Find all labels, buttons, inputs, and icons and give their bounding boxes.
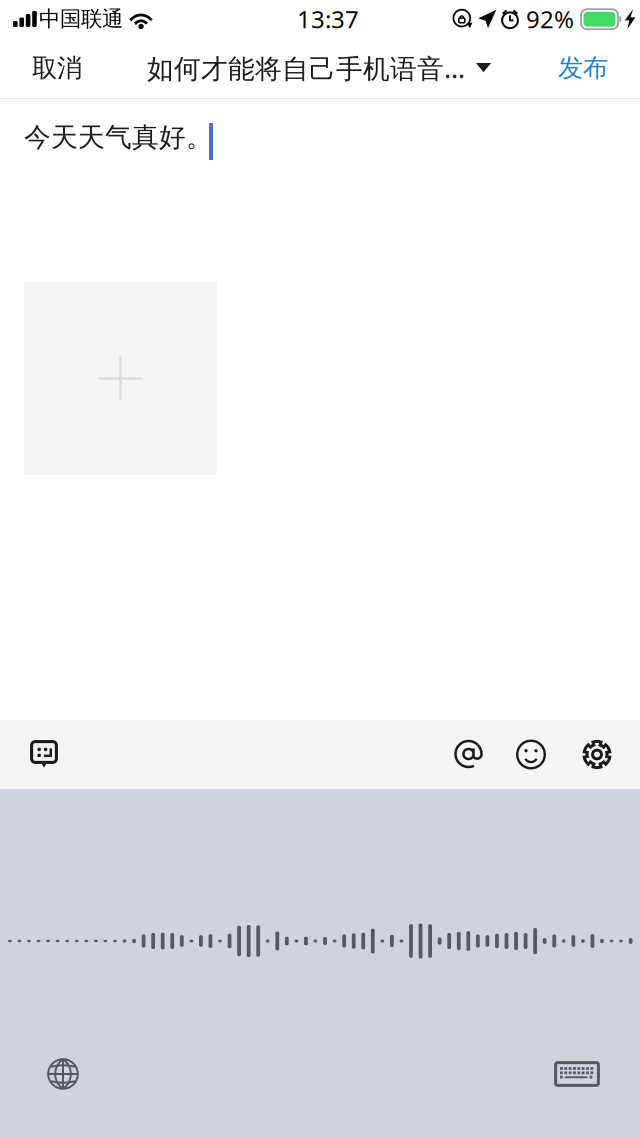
button[interactable]: Show keyboard bbox=[542, 1049, 612, 1099]
button[interactable]: Emoji bbox=[502, 720, 568, 788]
button[interactable]: 取消 bbox=[0, 38, 114, 98]
button[interactable]: Stickers bbox=[16, 722, 72, 787]
button[interactable]: 发布 bbox=[526, 38, 640, 98]
button[interactable]: Settings bbox=[568, 720, 626, 788]
staticText: 今天天气真好。 bbox=[24, 121, 213, 154]
staticText: 取消 bbox=[32, 52, 82, 83]
staticText: 中国联通 bbox=[39, 6, 123, 32]
staticText: 92% bbox=[526, 3, 574, 35]
staticText: 发布 bbox=[558, 52, 608, 83]
staticText: 13:37 bbox=[297, 3, 359, 35]
button[interactable]: Switch input language bbox=[35, 1046, 91, 1102]
button[interactable]: Mention someone bbox=[441, 721, 502, 788]
staticText: 如何才能将自己手机语音… bbox=[147, 50, 465, 86]
